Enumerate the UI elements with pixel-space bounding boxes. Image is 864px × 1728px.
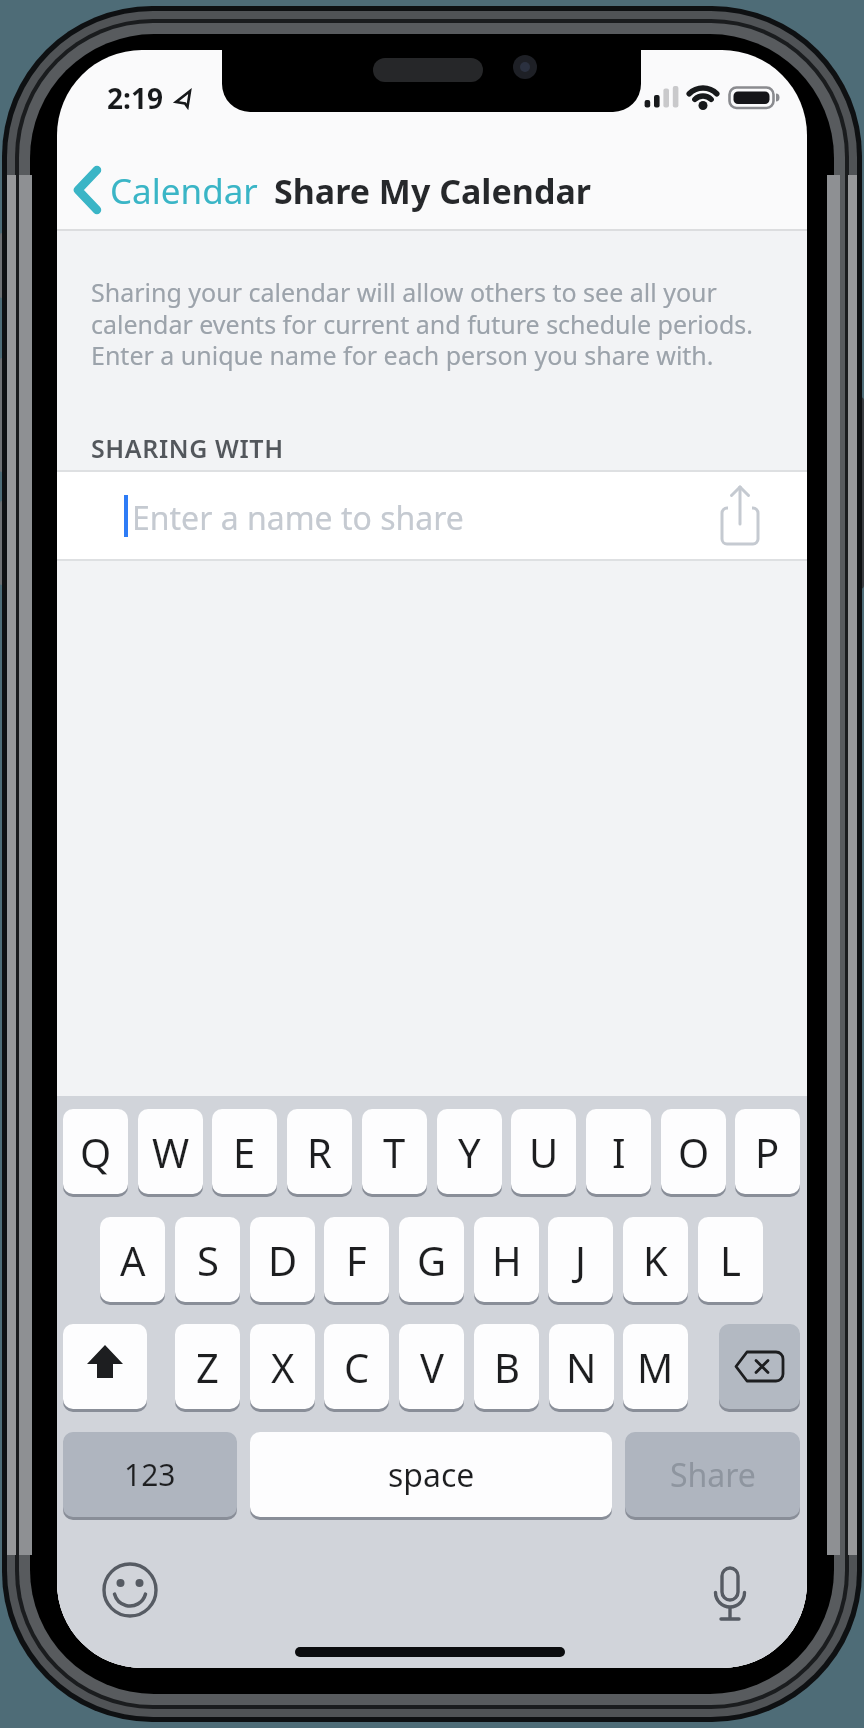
- staticText: F: [346, 1233, 367, 1287]
- staticText: C: [344, 1340, 370, 1394]
- staticText: Share My Calendar: [274, 168, 591, 214]
- button[interactable]: G: [399, 1217, 464, 1302]
- staticText: D: [268, 1233, 298, 1287]
- button[interactable]: Q: [63, 1109, 128, 1194]
- staticText: M: [637, 1340, 674, 1394]
- staticText: Z: [196, 1340, 219, 1394]
- staticText: calendar events for current and future s…: [91, 307, 753, 341]
- staticText: L: [720, 1233, 741, 1287]
- button[interactable]: Calendar: [67, 160, 277, 222]
- staticText: T: [383, 1125, 406, 1179]
- button[interactable]: [57, 471, 807, 559]
- button[interactable]: F: [324, 1217, 389, 1302]
- staticText: O: [678, 1125, 710, 1179]
- staticText: J: [575, 1233, 586, 1287]
- staticText: Share: [670, 1453, 756, 1497]
- button[interactable]: space: [250, 1432, 612, 1517]
- button[interactable]: J: [548, 1217, 613, 1302]
- button[interactable]: X: [250, 1324, 315, 1409]
- staticText: P: [755, 1125, 780, 1179]
- staticText: space: [388, 1453, 475, 1497]
- staticText: W: [152, 1125, 190, 1179]
- button[interactable]: Share: [625, 1432, 800, 1517]
- button[interactable]: S: [175, 1217, 240, 1302]
- staticText: Y: [458, 1125, 481, 1179]
- button[interactable]: Z: [175, 1324, 240, 1409]
- staticText: Enter a name to share: [132, 496, 464, 540]
- button[interactable]: A: [100, 1217, 165, 1302]
- staticText: I: [612, 1125, 626, 1179]
- button[interactable]: B: [474, 1324, 539, 1409]
- staticText: B: [494, 1340, 520, 1394]
- button[interactable]: R: [287, 1109, 352, 1194]
- button[interactable]: C: [324, 1324, 389, 1409]
- button[interactable]: [719, 1324, 800, 1409]
- staticText: U: [529, 1125, 559, 1179]
- button[interactable]: V: [399, 1324, 464, 1409]
- button[interactable]: K: [623, 1217, 688, 1302]
- staticText: S: [197, 1233, 219, 1287]
- staticText: E: [233, 1125, 256, 1179]
- staticText: X: [271, 1340, 295, 1394]
- staticText: V: [420, 1340, 444, 1394]
- button[interactable]: U: [511, 1109, 576, 1194]
- staticText: H: [492, 1233, 522, 1287]
- button[interactable]: E: [212, 1109, 277, 1194]
- staticText: 123: [124, 1454, 176, 1495]
- staticText: 2:19: [107, 79, 163, 117]
- button[interactable]: M: [623, 1324, 688, 1409]
- button[interactable]: L: [698, 1217, 763, 1302]
- button[interactable]: [63, 1324, 147, 1409]
- button[interactable]: 123: [63, 1432, 237, 1517]
- button[interactable]: D: [250, 1217, 315, 1302]
- button[interactable]: W: [138, 1109, 203, 1194]
- staticText: G: [417, 1233, 447, 1287]
- staticText: SHARING WITH: [91, 431, 284, 465]
- staticText: Q: [80, 1125, 112, 1179]
- button[interactable]: H: [474, 1217, 539, 1302]
- staticText: K: [643, 1233, 668, 1287]
- staticText: R: [307, 1125, 332, 1179]
- staticText: Sharing your calendar will allow others …: [91, 275, 717, 309]
- button[interactable]: Y: [437, 1109, 502, 1194]
- staticText: Enter a unique name for each person you …: [91, 338, 714, 372]
- staticText: Calendar: [110, 167, 258, 215]
- button[interactable]: I: [586, 1109, 651, 1194]
- staticText: A: [120, 1233, 146, 1287]
- button[interactable]: O: [661, 1109, 726, 1194]
- button[interactable]: P: [735, 1109, 800, 1194]
- staticText: N: [566, 1340, 597, 1394]
- button[interactable]: T: [362, 1109, 427, 1194]
- button[interactable]: N: [549, 1324, 614, 1409]
